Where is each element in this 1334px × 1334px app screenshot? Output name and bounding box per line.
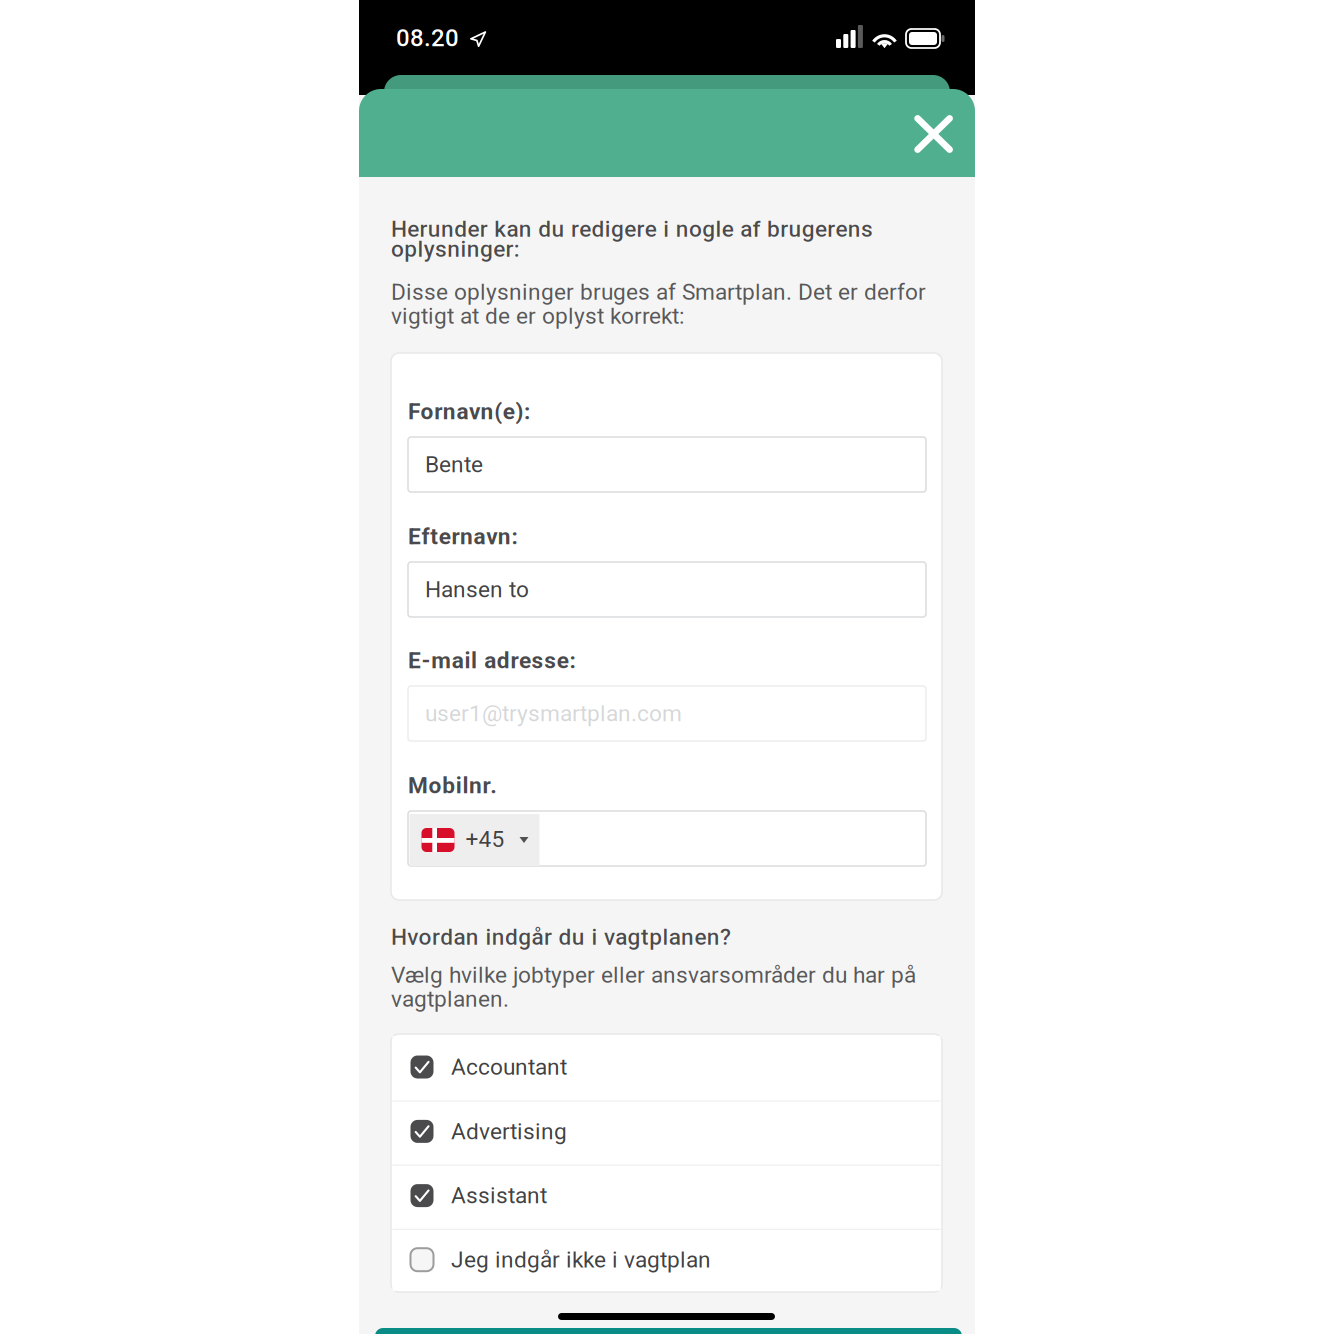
button[interactable]: Assistant [392,1165,940,1227]
staticText: Hansen to [425,576,529,603]
staticText: E-mail adresse: [408,648,575,672]
staticText: Hvordan indgår du i vagtplanen? [391,927,731,947]
staticText: user1@trysmartplan.com [425,700,682,727]
button[interactable]: Jeg indgår ikke i vagtplan [392,1229,940,1291]
staticText: 08.20 [396,24,459,52]
staticText: Bente [425,451,483,478]
staticText: Efternavn: [408,524,517,548]
staticText: Jeg indgår ikke i vagtplan [451,1246,711,1273]
staticText: Fornavn(e): [408,399,530,423]
staticText: Herunder kan du redigere i nogle af brug… [391,219,873,259]
staticText: Advertising [451,1118,567,1145]
button[interactable]: Advertising [392,1100,940,1162]
staticText: Vælg hvilke jobtyper eller ansvarsområde… [391,963,916,1011]
button[interactable]: Gem [375,1328,962,1334]
button[interactable]: Accountant [392,1036,940,1098]
staticText: Accountant [451,1054,567,1080]
button[interactable]: Luk [901,102,963,164]
staticText: Mobilnr. [408,773,497,797]
staticText: Disse oplysninger bruges af Smartplan. D… [391,280,926,328]
staticText: Assistant [451,1182,547,1209]
staticText: +45 [465,826,504,853]
button[interactable]: Landekode +45 [409,814,539,866]
